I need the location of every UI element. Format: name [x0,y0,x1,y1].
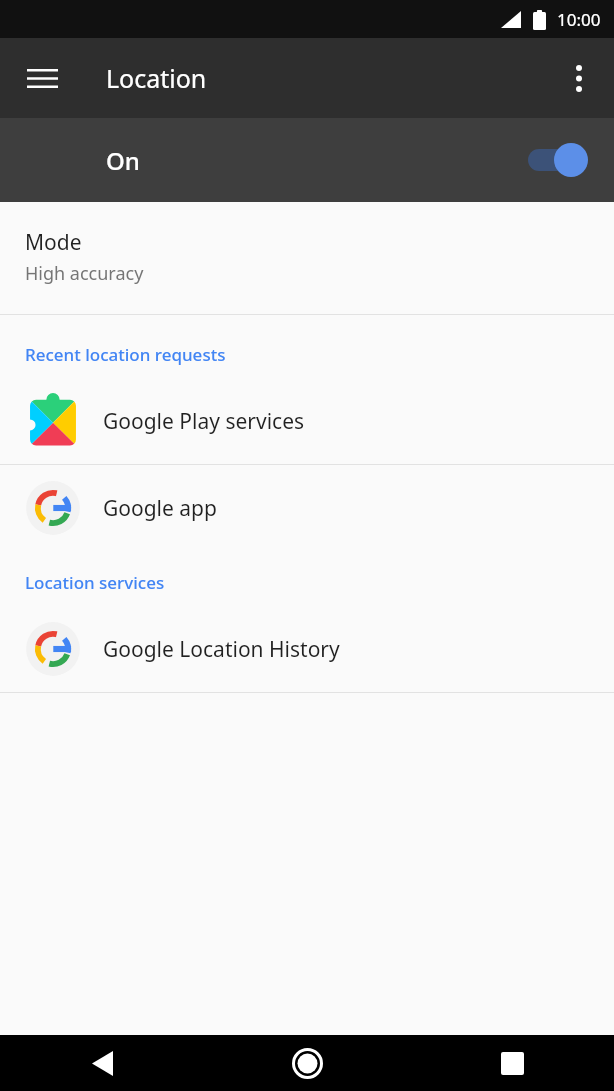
button[interactable]: Open navigation menu [13,49,71,107]
button[interactable]: Home [275,1035,339,1091]
button[interactable]: On [0,118,614,202]
button[interactable]: Mode [0,202,614,314]
button[interactable]: Google Location History [0,606,614,692]
staticText: 10:00 [557,8,601,31]
staticText: Location services [25,571,614,594]
button[interactable]: Back [70,1035,134,1091]
staticText: Google Location History [103,635,340,664]
staticText: Google Play services [103,407,305,436]
staticText: Mode [25,228,82,257]
staticText: Recent location requests [25,343,614,366]
staticText: High accuracy [25,261,144,286]
staticText: Location [106,61,207,95]
button[interactable]: Google app [0,465,614,551]
button[interactable]: Google Play services [0,378,614,464]
button[interactable]: More options [552,51,606,105]
staticText: Google app [103,494,217,523]
staticText: On [106,144,140,177]
button[interactable]: Recent apps [480,1035,544,1091]
